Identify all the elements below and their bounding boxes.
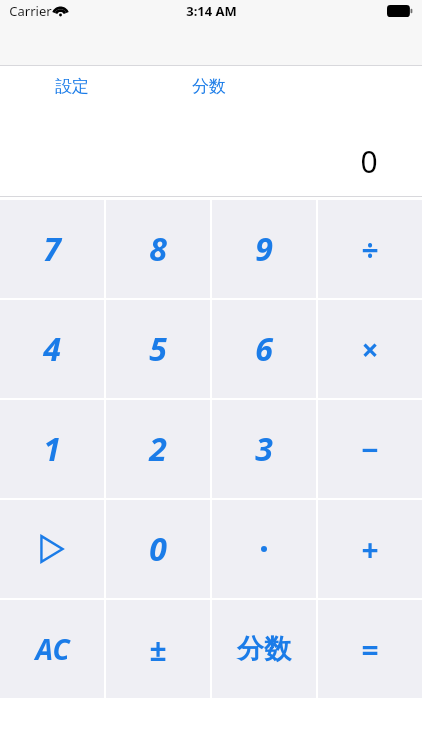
staticText: 4 xyxy=(43,327,61,371)
button[interactable]: 2 xyxy=(106,400,210,498)
button[interactable]: 8 xyxy=(106,200,210,298)
button[interactable]: Decimal point xyxy=(212,500,316,598)
button[interactable]: − xyxy=(318,400,422,498)
staticText: 1 xyxy=(43,427,61,471)
button[interactable]: 設定 xyxy=(40,68,104,104)
staticText: ÷ xyxy=(361,229,379,270)
staticText: 設定 xyxy=(55,76,89,97)
button[interactable]: 7 xyxy=(0,200,104,298)
button[interactable]: 3 xyxy=(212,400,316,498)
staticText: 3:14 AM xyxy=(186,2,237,20)
staticText: − xyxy=(361,429,379,470)
button[interactable]: 4 xyxy=(0,300,104,398)
button[interactable]: 5 xyxy=(106,300,210,398)
button[interactable]: 1 xyxy=(0,400,104,498)
staticText: 分数 xyxy=(192,76,226,97)
staticText: 6 xyxy=(255,327,273,371)
button[interactable]: 9 xyxy=(212,200,316,298)
button[interactable]: 6 xyxy=(212,300,316,398)
staticText: 分数 xyxy=(237,632,291,666)
staticText: + xyxy=(361,529,379,570)
staticText: 9 xyxy=(255,227,273,271)
button[interactable]: × xyxy=(318,300,422,398)
button[interactable]: AC xyxy=(0,600,104,698)
staticText: Carrier xyxy=(9,2,52,20)
button[interactable]: ± xyxy=(106,600,210,698)
staticText: 0 xyxy=(149,527,167,571)
staticText: ± xyxy=(149,629,167,670)
staticText: 7 xyxy=(43,227,61,271)
staticText: AC xyxy=(35,630,70,668)
staticText: 3 xyxy=(255,427,273,471)
staticText: × xyxy=(361,329,379,370)
staticText: 5 xyxy=(149,327,167,371)
staticText: 8 xyxy=(149,227,167,271)
button[interactable]: ÷ xyxy=(318,200,422,298)
button[interactable]: 0 xyxy=(106,500,210,598)
button[interactable]: Backspace xyxy=(0,500,104,598)
staticText: 0 xyxy=(360,141,378,182)
button[interactable]: 分数 xyxy=(177,68,241,104)
staticText: 2 xyxy=(149,427,167,471)
button[interactable]: 分数 xyxy=(212,600,316,698)
button[interactable]: + xyxy=(318,500,422,598)
staticText: = xyxy=(361,629,379,670)
button[interactable]: = xyxy=(318,600,422,698)
